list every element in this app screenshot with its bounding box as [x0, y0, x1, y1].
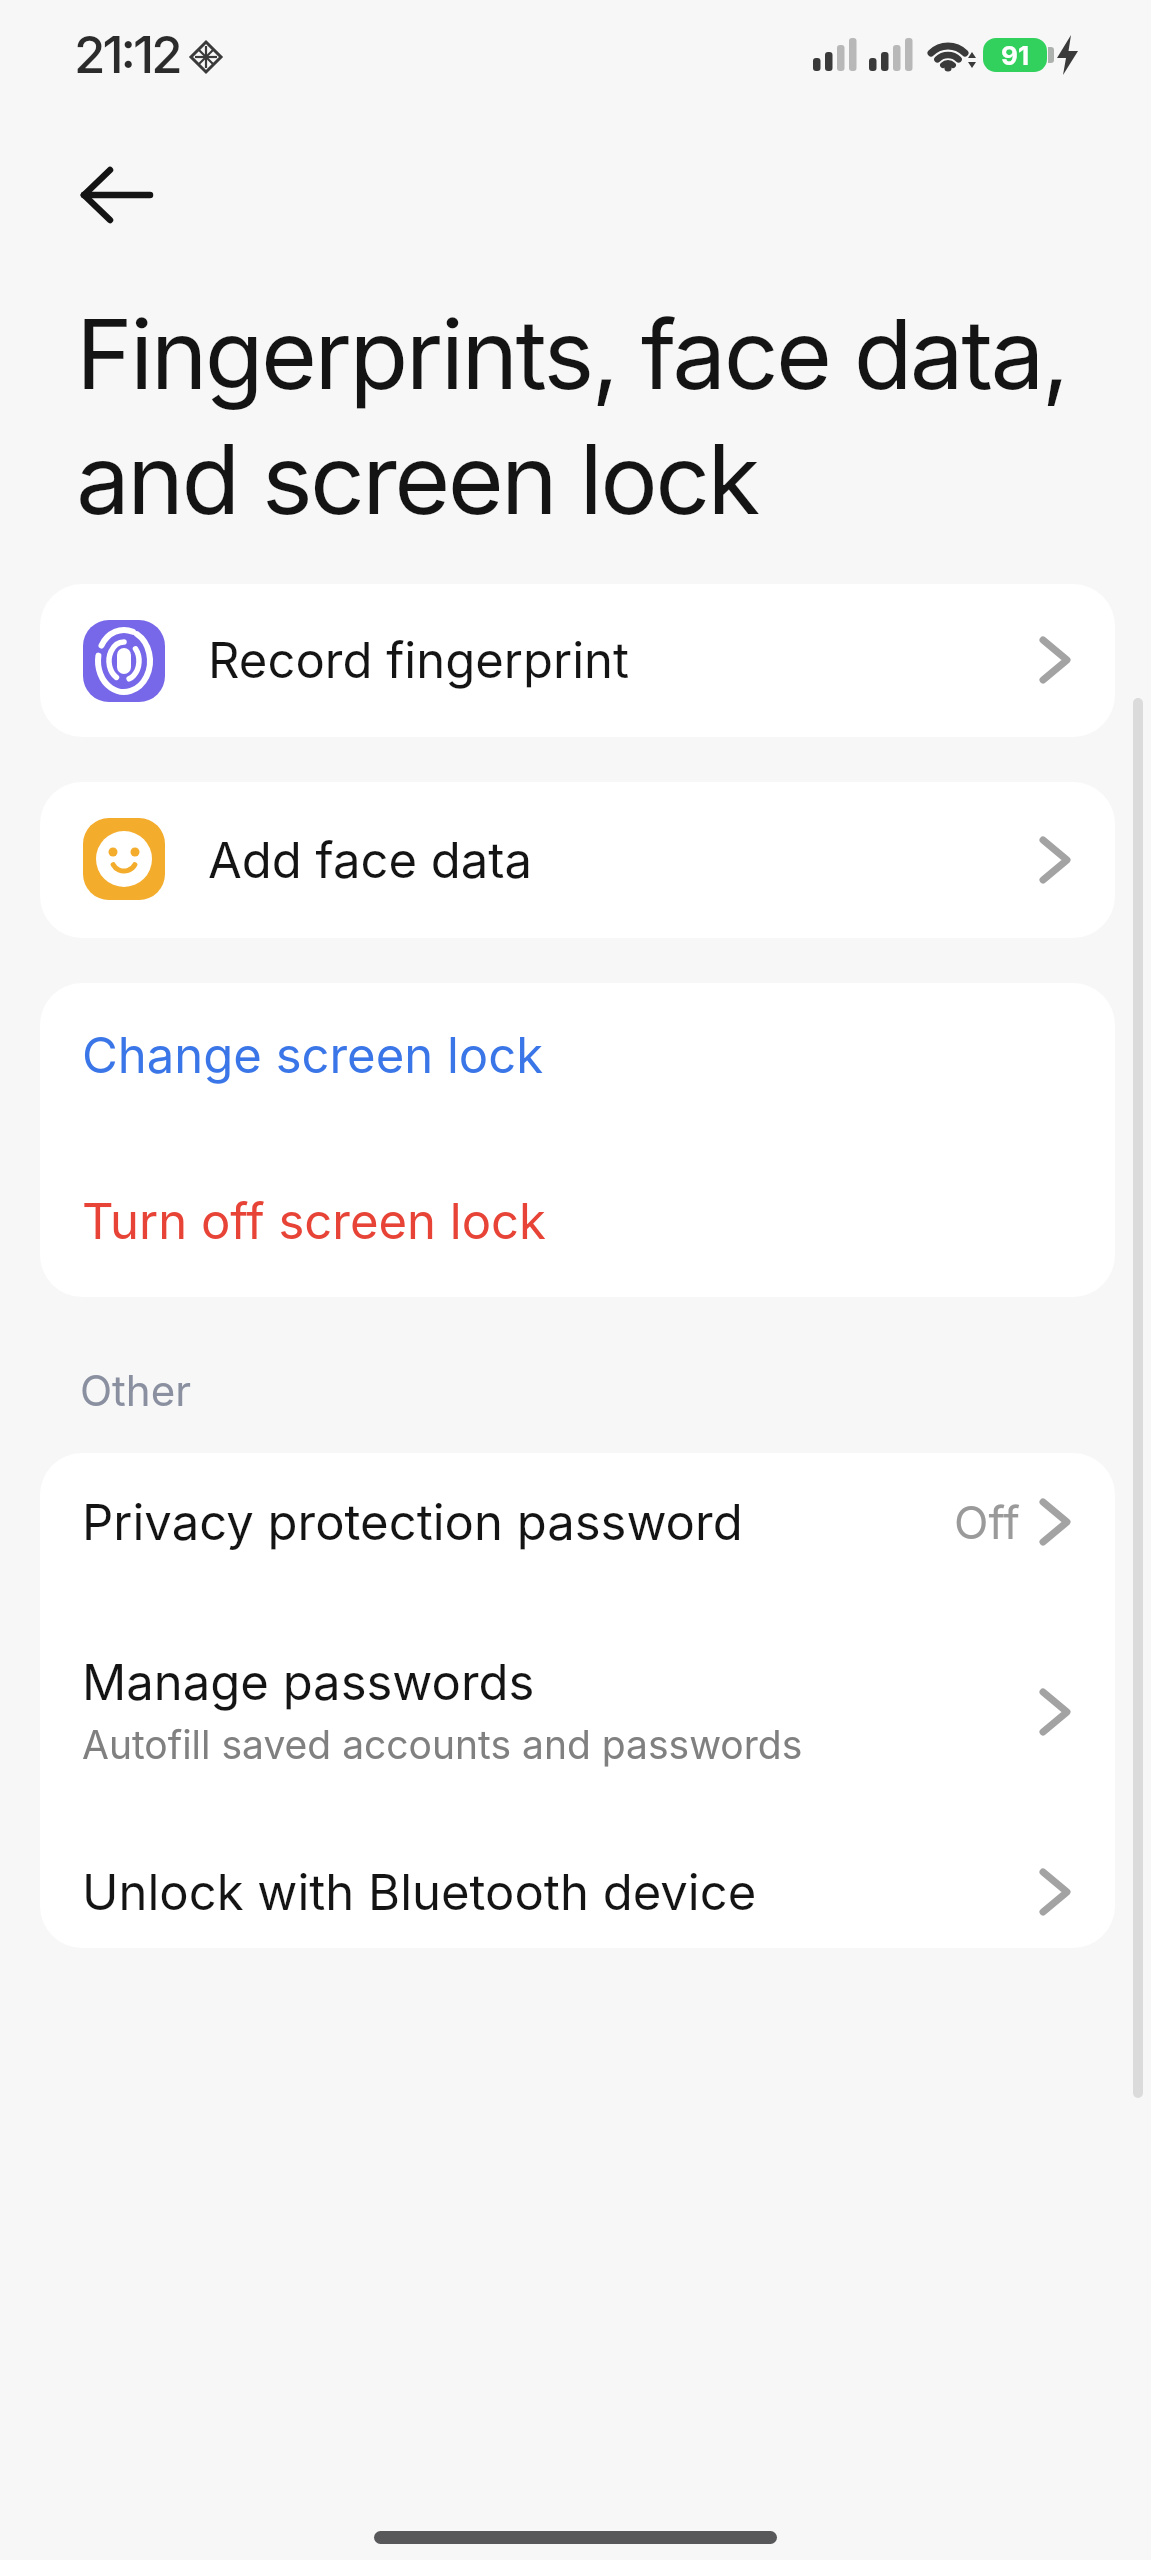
staticText: Off [954, 1495, 1020, 1549]
button[interactable] [64, 155, 170, 239]
staticText: Change screen lock [82, 1026, 544, 1085]
staticText: Autofill saved accounts and passwords [82, 1721, 803, 1768]
staticText: Turn off screen lock [82, 1192, 546, 1251]
staticText: 21:12 [74, 24, 180, 86]
button[interactable]: Turn off screen lock [82, 1181, 546, 1261]
button[interactable] [40, 782, 1115, 938]
button[interactable]: Privacy protection password [82, 1482, 743, 1562]
button[interactable]: Unlock with Bluetooth device [82, 1852, 757, 1932]
staticText: Unlock with Bluetooth device [82, 1863, 757, 1922]
staticText: Privacy protection password [82, 1493, 743, 1552]
button[interactable] [40, 584, 1115, 737]
staticText: Record fingerprint [208, 631, 630, 690]
button[interactable]: Change screen lock [82, 1015, 544, 1095]
button[interactable]: Manage passwords [82, 1642, 535, 1722]
staticText: Manage passwords [82, 1653, 535, 1712]
staticText: Fingerprints, face data, and screen lock [76, 296, 1067, 537]
staticText: Add face data [208, 831, 533, 890]
staticText: 91 [1001, 40, 1030, 71]
staticText: Other [80, 1365, 191, 1416]
